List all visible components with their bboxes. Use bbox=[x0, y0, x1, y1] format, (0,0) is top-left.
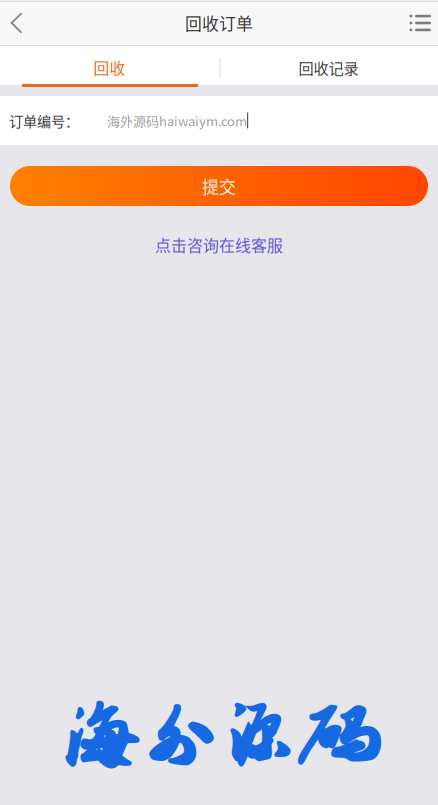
staticText: 点击咨询在线客服 bbox=[155, 233, 283, 256]
button[interactable]: 订单编号： bbox=[0, 96, 438, 145]
staticText: 海外源码 bbox=[61, 694, 377, 782]
button[interactable]: 回收记录 bbox=[219, 46, 438, 85]
button[interactable]: 回收 bbox=[0, 46, 219, 85]
button[interactable]: Back bbox=[0, 0, 44, 46]
button[interactable]: 点击咨询在线客服 bbox=[131, 227, 307, 262]
staticText: 回收 bbox=[93, 56, 125, 79]
staticText: 订单编号： bbox=[9, 110, 79, 131]
button[interactable]: Menu bbox=[394, 0, 438, 46]
staticText: 海外源码haiwaiym.com bbox=[107, 111, 247, 130]
button[interactable]: 提交 bbox=[10, 166, 428, 206]
staticText: 回收订单 bbox=[185, 11, 253, 35]
staticText: 提交 bbox=[202, 174, 236, 198]
staticText: 回收记录 bbox=[298, 56, 358, 78]
